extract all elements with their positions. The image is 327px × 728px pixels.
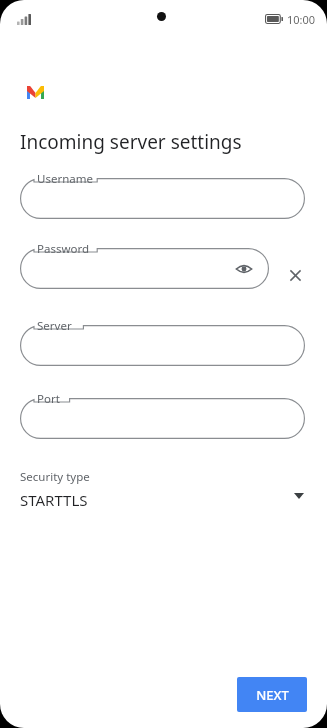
staticText: STARTTLS: [20, 490, 88, 510]
staticText: 10:00: [287, 12, 316, 27]
staticText: Security type: [20, 469, 90, 485]
button[interactable]: Security type: [20, 464, 305, 516]
staticText: NEXT: [256, 686, 289, 704]
staticText: Port: [37, 391, 60, 407]
button[interactable]: Show password: [20, 248, 269, 289]
button[interactable]: Show password: [233, 258, 255, 280]
staticText: Server: [37, 318, 72, 334]
button[interactable]: [20, 325, 305, 366]
staticText: Username: [37, 171, 93, 187]
button[interactable]: [20, 398, 305, 439]
button[interactable]: Clear password: [283, 263, 307, 287]
button[interactable]: [20, 178, 305, 219]
staticText: Incoming server settings: [20, 129, 242, 155]
staticText: Password: [37, 241, 90, 257]
button[interactable]: NEXT: [237, 677, 307, 712]
